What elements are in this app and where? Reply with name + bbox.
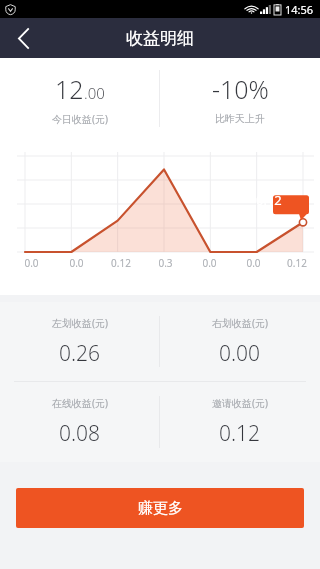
button[interactable]: 右划收益(元) — [160, 302, 320, 381]
staticText: 0.00 — [219, 339, 261, 368]
staticText: 0.12 — [256, 191, 282, 209]
staticText: 0.08 — [59, 419, 101, 448]
staticText: 右划收益(元) — [212, 316, 268, 330]
staticText: 0.0 — [69, 256, 84, 270]
staticText: 邀请收益(元) — [212, 396, 268, 410]
button[interactable]: 赚更多 — [16, 488, 304, 528]
staticText: 0.12 — [219, 419, 261, 448]
staticText: 今日收益(元) — [52, 112, 108, 126]
staticText: 0.12 — [111, 256, 131, 270]
staticText: 收益明细 — [126, 28, 194, 49]
staticText: 比昨天上升 — [215, 112, 265, 125]
staticText: 0.3 — [158, 256, 173, 270]
staticText: 0.0 — [246, 256, 261, 270]
staticText: 0.0 — [24, 256, 39, 270]
button[interactable]: 在线收益(元) — [0, 382, 159, 462]
staticText: 在线收益(元) — [52, 396, 108, 410]
staticText: 赚更多 — [138, 499, 183, 518]
staticText: 12 — [55, 72, 84, 106]
staticText: 14:56 — [285, 2, 314, 17]
staticText: 0.26 — [59, 339, 101, 368]
staticText: 0.12 — [287, 256, 307, 270]
button[interactable]: 左划收益(元) — [0, 302, 159, 381]
staticText: 0.0 — [202, 256, 217, 270]
staticText: .00 — [84, 83, 105, 103]
button[interactable]: 邀请收益(元) — [160, 382, 320, 462]
button[interactable]: Back — [0, 18, 46, 58]
staticText: 左划收益(元) — [52, 316, 108, 330]
staticText: -10% — [212, 72, 269, 106]
